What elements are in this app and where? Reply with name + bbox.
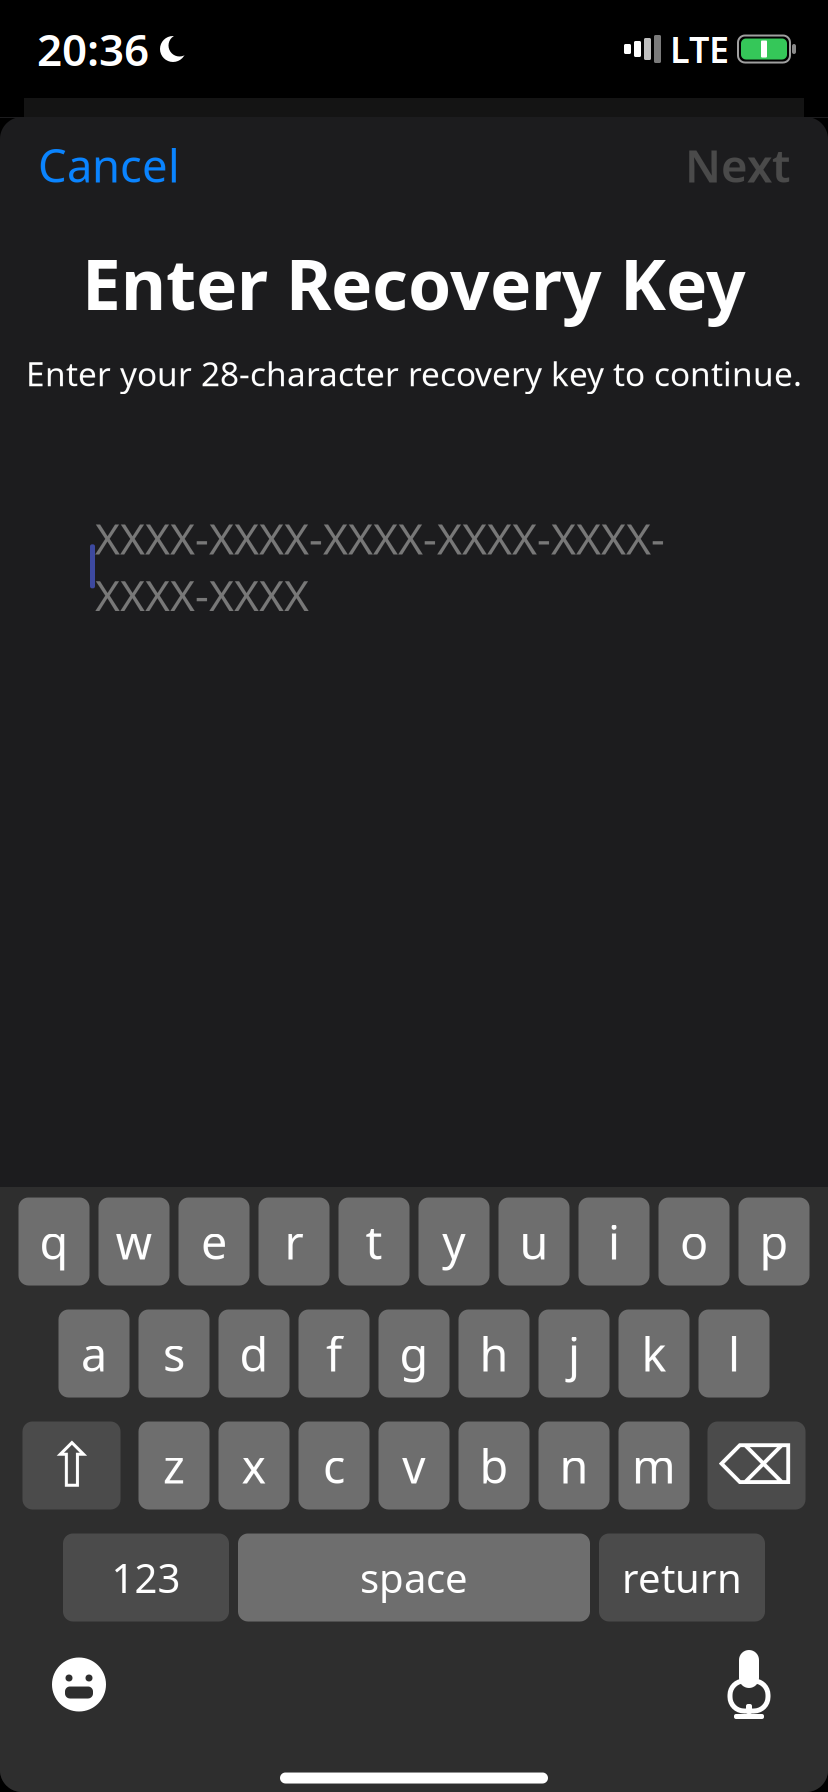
- button[interactable]: t: [338, 1197, 409, 1285]
- staticText: w: [115, 1210, 152, 1272]
- staticText: v: [402, 1434, 426, 1496]
- staticText: h: [479, 1322, 508, 1384]
- staticText: return: [622, 1551, 742, 1604]
- button[interactable]: w: [98, 1197, 169, 1285]
- staticText: o: [680, 1210, 708, 1272]
- button[interactable]: Dictation: [714, 1649, 784, 1719]
- staticText: e: [201, 1210, 227, 1272]
- staticText: y: [442, 1210, 466, 1272]
- staticText: j: [568, 1322, 580, 1384]
- staticText: LTE: [670, 25, 729, 73]
- button[interactable]: return: [599, 1533, 765, 1621]
- staticText: XXXX-XXXX-XXXX-XXXX-XXXX-XXXX-XXXX: [95, 510, 665, 623]
- staticText: 20:36: [37, 20, 149, 78]
- button[interactable]: 123: [63, 1533, 229, 1621]
- button[interactable]: p: [738, 1197, 809, 1285]
- button[interactable]: XXXX-XXXX-XXXX-XXXX-XXXX-XXXX-XXXX: [0, 521, 828, 611]
- button[interactable]: d: [218, 1309, 289, 1397]
- staticText: x: [241, 1434, 266, 1496]
- button[interactable]: Cancel: [0, 121, 218, 209]
- button[interactable]: z: [138, 1421, 209, 1509]
- staticText: Enter Recovery Key: [82, 237, 746, 329]
- button[interactable]: b: [458, 1421, 529, 1509]
- button[interactable]: n: [538, 1421, 609, 1509]
- button[interactable]: m: [618, 1421, 689, 1509]
- button[interactable]: q: [18, 1197, 89, 1285]
- button[interactable]: Delete: [707, 1421, 805, 1509]
- button[interactable]: v: [378, 1421, 449, 1509]
- staticText: z: [163, 1434, 185, 1496]
- staticText: b: [479, 1434, 508, 1496]
- staticText: k: [641, 1322, 666, 1384]
- staticText: space: [360, 1551, 468, 1604]
- staticText: c: [323, 1434, 345, 1496]
- button[interactable]: u: [498, 1197, 569, 1285]
- staticText: i: [608, 1210, 620, 1272]
- staticText: d: [239, 1322, 268, 1384]
- button[interactable]: h: [458, 1309, 529, 1397]
- button[interactable]: Next: [647, 121, 828, 209]
- button[interactable]: g: [378, 1309, 449, 1397]
- staticText: f: [326, 1322, 342, 1384]
- button[interactable]: a: [58, 1309, 129, 1397]
- button[interactable]: i: [578, 1197, 649, 1285]
- staticText: 123: [111, 1551, 180, 1604]
- staticText: g: [399, 1322, 428, 1384]
- staticText: t: [365, 1210, 382, 1272]
- staticText: q: [39, 1210, 68, 1272]
- staticText: ⌫: [719, 1435, 794, 1496]
- staticText: u: [519, 1210, 548, 1272]
- staticText: Next: [685, 135, 790, 195]
- button[interactable]: e: [178, 1197, 249, 1285]
- button[interactable]: j: [538, 1309, 609, 1397]
- button[interactable]: l: [698, 1309, 769, 1397]
- staticText: l: [728, 1322, 740, 1384]
- button[interactable]: x: [218, 1421, 289, 1509]
- button[interactable]: space: [238, 1533, 590, 1621]
- staticText: ⇧: [46, 1431, 97, 1500]
- button[interactable]: Emoji keyboard: [44, 1649, 114, 1719]
- staticText: r: [284, 1210, 303, 1272]
- button[interactable]: c: [298, 1421, 369, 1509]
- button[interactable]: s: [138, 1309, 209, 1397]
- staticText: Cancel: [38, 135, 180, 195]
- staticText: Enter your 28-character recovery key to …: [26, 351, 802, 395]
- button[interactable]: y: [418, 1197, 489, 1285]
- staticText: n: [559, 1434, 588, 1496]
- button[interactable]: Shift: [22, 1421, 120, 1509]
- staticText: a: [81, 1322, 107, 1384]
- button[interactable]: k: [618, 1309, 689, 1397]
- button[interactable]: r: [258, 1197, 329, 1285]
- staticText: s: [163, 1322, 185, 1384]
- button[interactable]: f: [298, 1309, 369, 1397]
- staticText: m: [632, 1434, 676, 1496]
- button[interactable]: o: [658, 1197, 729, 1285]
- staticText: p: [759, 1210, 788, 1272]
